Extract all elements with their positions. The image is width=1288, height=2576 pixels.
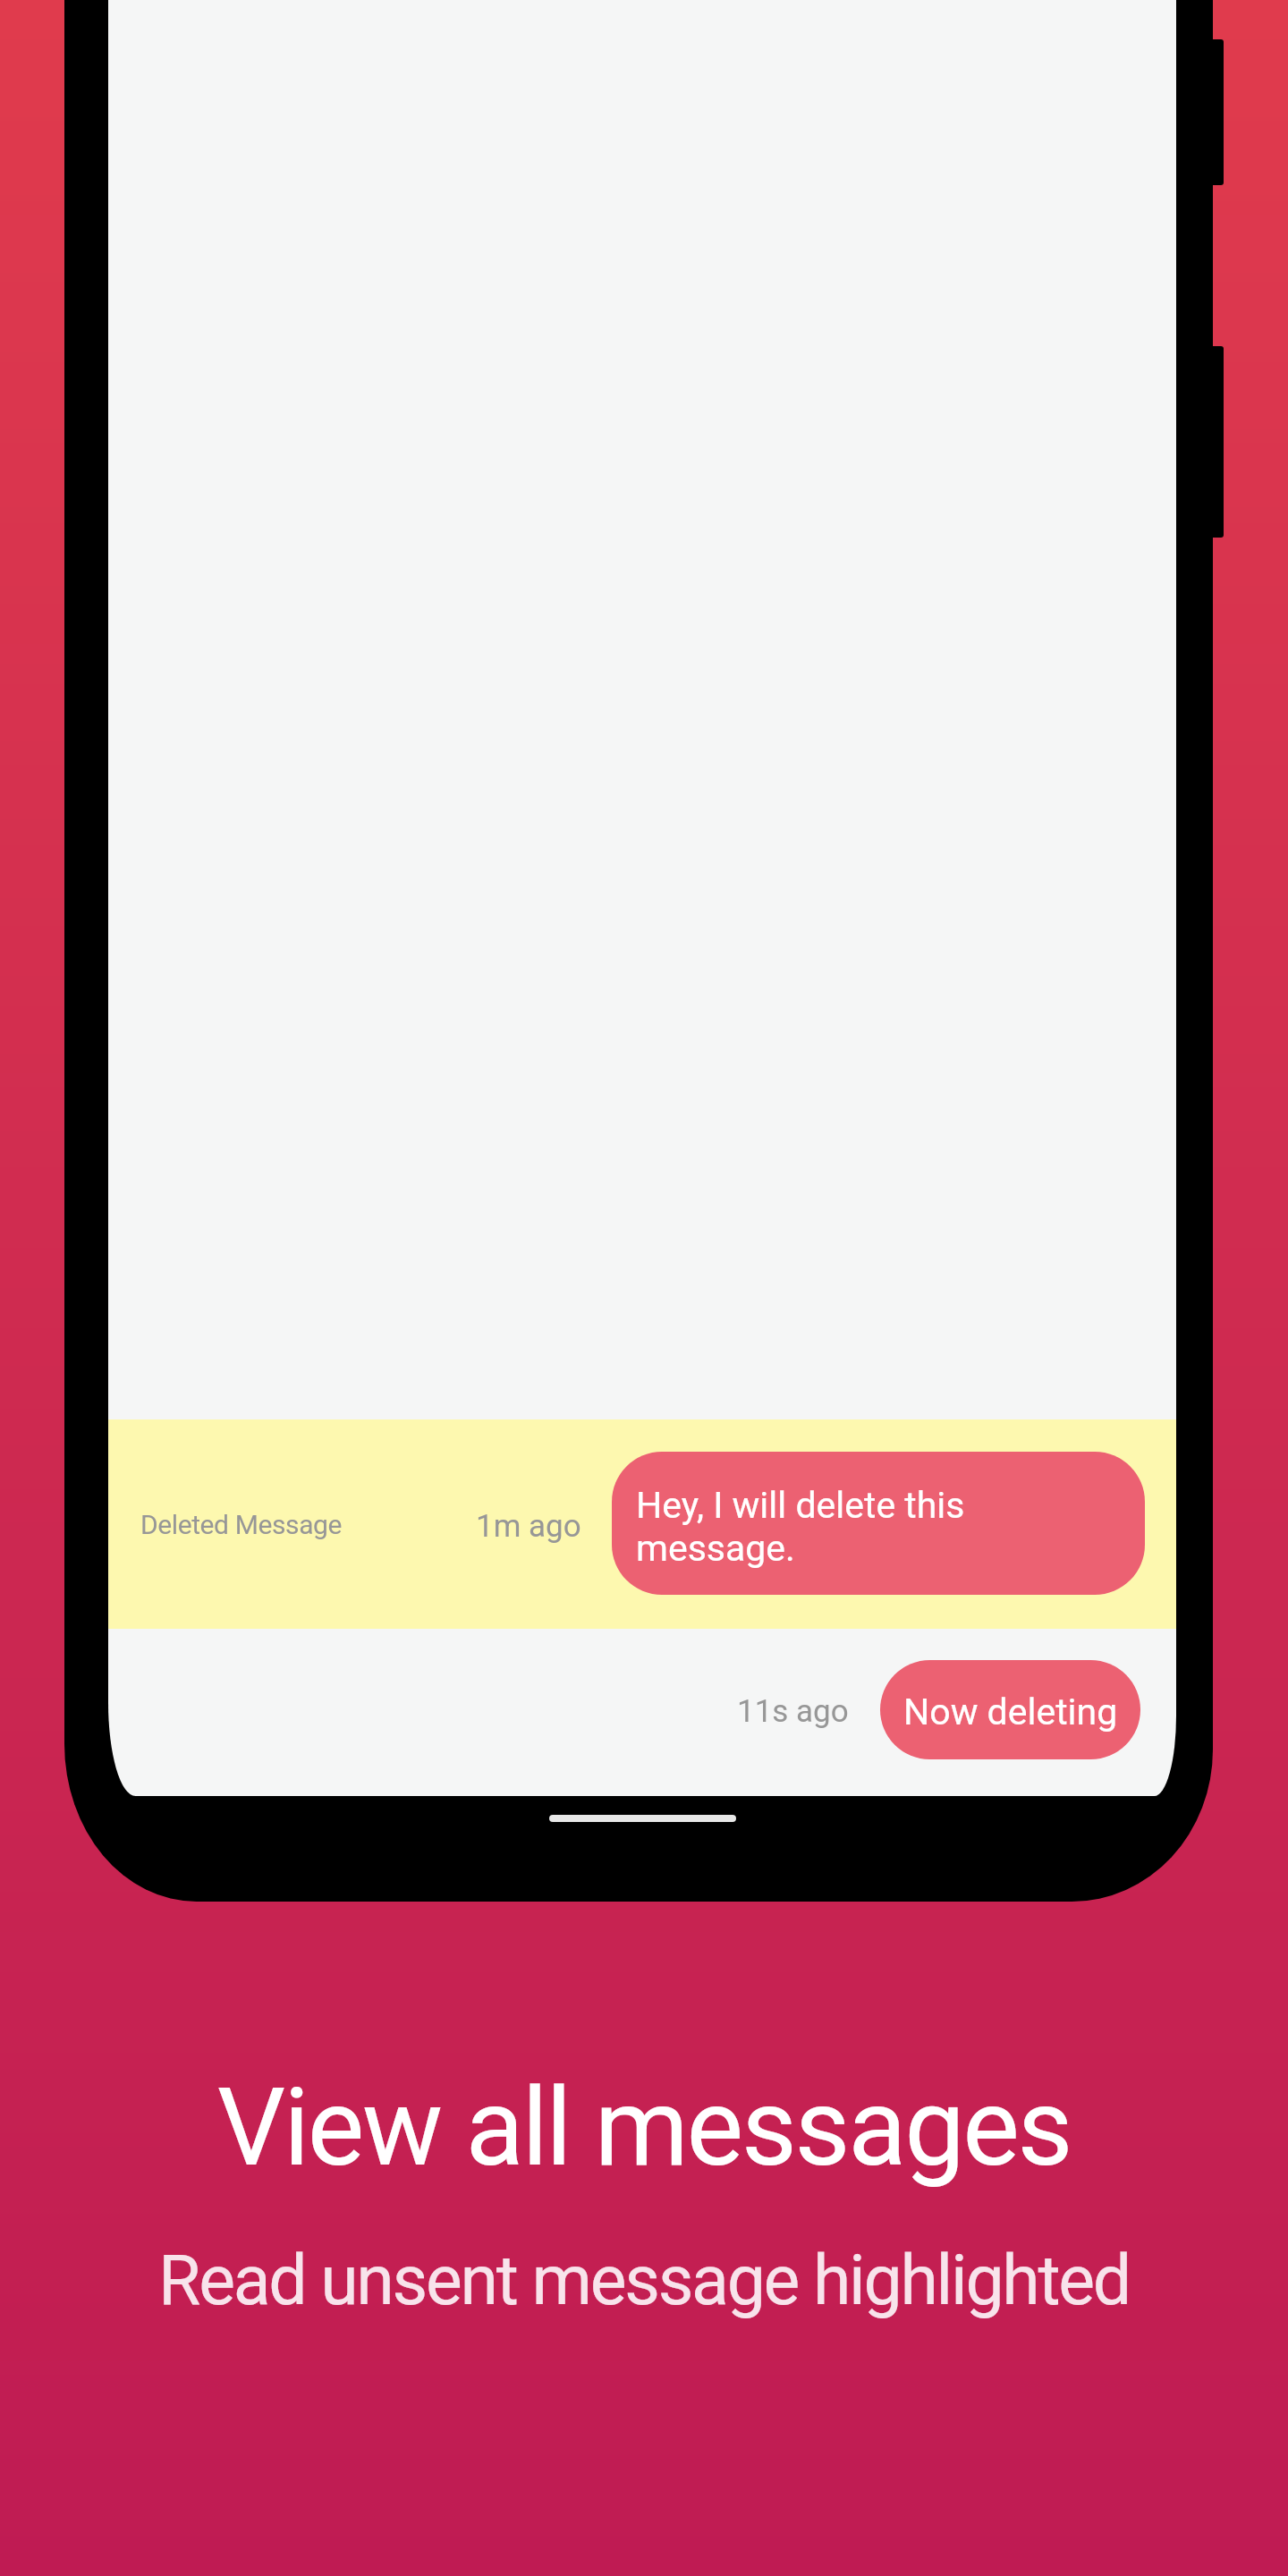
button[interactable]: Deleted Message: [108, 1419, 1176, 1629]
button[interactable]: Hey, I will delete this message.: [612, 1452, 1145, 1595]
staticText: Hey, I will delete this message.: [636, 1484, 965, 1570]
other: Power: [1199, 346, 1224, 538]
button[interactable]: Now deleting: [880, 1660, 1140, 1759]
other: Volume: [1199, 39, 1224, 185]
staticText: Deleted Message: [140, 1509, 343, 1540]
staticText: Read unsent message highlighted: [0, 2241, 1288, 2321]
staticText: View all messages: [0, 2065, 1288, 2191]
staticText: Now deleting: [903, 1690, 1118, 1733]
button[interactable]: 11s ago: [108, 1629, 1176, 1796]
staticText: 11s ago: [737, 1693, 849, 1730]
staticText: 1m ago: [476, 1508, 581, 1545]
